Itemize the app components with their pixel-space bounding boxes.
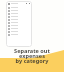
button[interactable]	[6, 27, 32, 30]
button[interactable]	[6, 24, 32, 27]
button[interactable]	[6, 33, 32, 36]
button[interactable]	[6, 30, 32, 33]
staticText: Separate out expenses by category	[14, 47, 50, 64]
button[interactable]	[6, 9, 32, 12]
button[interactable]	[6, 12, 32, 15]
button[interactable]	[6, 15, 32, 18]
button[interactable]	[6, 21, 32, 24]
button[interactable]	[6, 18, 32, 21]
button[interactable]	[6, 6, 32, 9]
